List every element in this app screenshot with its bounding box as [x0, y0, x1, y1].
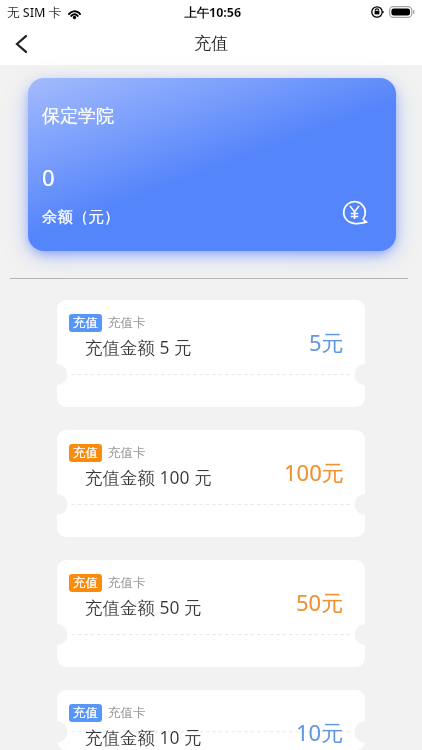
staticText: 充值金额 5 元: [85, 335, 192, 359]
staticText: 0: [42, 162, 55, 192]
staticText: 10元: [296, 717, 344, 747]
staticText: 100元: [284, 457, 344, 487]
staticText: 50元: [296, 587, 344, 617]
staticText: 充值金额 50 元: [85, 595, 202, 619]
staticText: 充值卡: [108, 705, 146, 721]
staticText: 充值: [194, 33, 228, 54]
staticText: 上午10:56: [184, 4, 242, 21]
button[interactable]: 充值: [57, 430, 365, 537]
button[interactable]: Back: [4, 26, 40, 62]
staticText: 充值卡: [108, 445, 146, 461]
staticText: 充值卡: [108, 315, 146, 331]
staticText: 充值: [73, 705, 98, 721]
staticText: 充值卡: [108, 575, 146, 591]
staticText: 充值: [73, 315, 98, 331]
staticText: 保定学院: [42, 105, 114, 128]
staticText: 充值金额 100 元: [85, 465, 212, 489]
staticText: 充值金额 10 元: [85, 725, 202, 749]
staticText: 余额（元）: [42, 207, 120, 227]
staticText: 充值: [73, 575, 98, 591]
button[interactable]: 充值: [57, 690, 365, 750]
staticText: 无 SIM 卡: [7, 4, 62, 21]
button[interactable]: 充值: [57, 560, 365, 667]
staticText: 5元: [309, 327, 344, 357]
staticText: 充值: [73, 445, 98, 461]
button[interactable]: 保定学院: [28, 78, 396, 251]
button[interactable]: 充值: [57, 300, 365, 407]
